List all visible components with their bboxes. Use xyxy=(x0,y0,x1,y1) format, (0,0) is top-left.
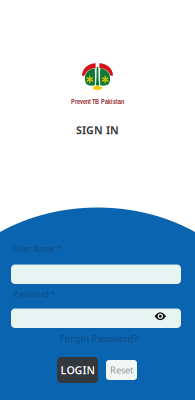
staticText: Password xyxy=(13,289,49,300)
staticText: Reset xyxy=(110,364,133,376)
button[interactable]: Reset xyxy=(106,360,137,380)
staticText: Forgot Password? xyxy=(59,332,137,345)
staticText: LOGIN xyxy=(60,363,94,377)
staticText: Prevent TB Pakistan xyxy=(71,97,124,106)
staticText: User Name xyxy=(13,243,55,254)
button[interactable]: Show password xyxy=(155,314,181,322)
button[interactable]: Forgot Password? xyxy=(48,332,148,344)
staticText: * xyxy=(57,243,61,254)
staticText: * xyxy=(51,289,55,300)
staticText: SIGN IN xyxy=(76,123,119,137)
button[interactable]: LOGIN xyxy=(57,357,98,383)
